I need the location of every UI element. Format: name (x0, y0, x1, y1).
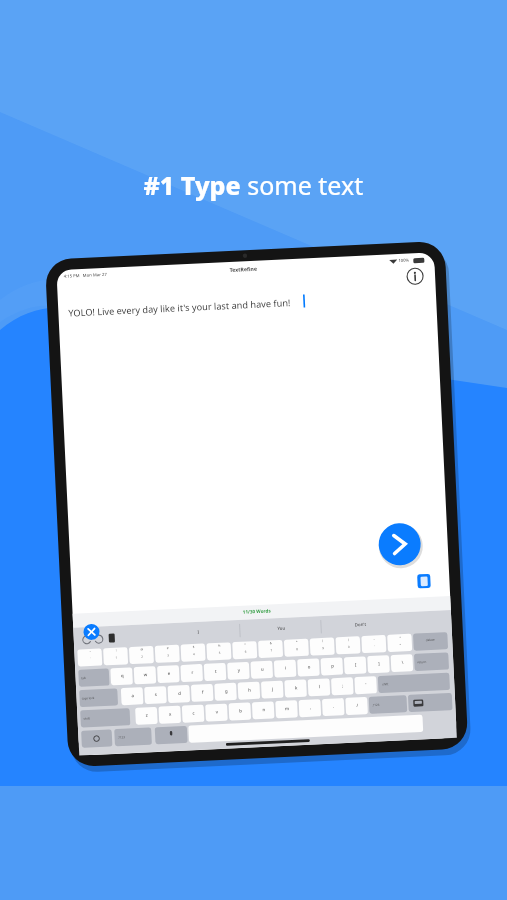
other: Type some text onboarding screen (0, 0, 507, 900)
button[interactable] (0, 0, 507, 900)
